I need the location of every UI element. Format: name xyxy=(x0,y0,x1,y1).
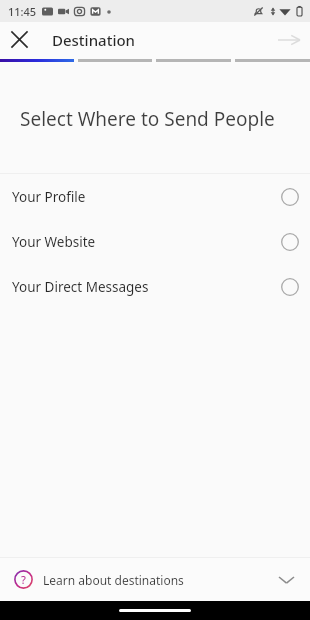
button[interactable]: Your Direct Messages xyxy=(0,264,310,309)
button[interactable]: Your Website xyxy=(0,219,310,264)
staticText: Your Direct Messages xyxy=(12,278,149,296)
button[interactable]: ? xyxy=(0,558,310,601)
staticText: Select Where to Send People xyxy=(20,106,300,132)
staticText: ? xyxy=(21,572,26,587)
button[interactable]: Your Profile xyxy=(0,174,310,219)
button[interactable]: Next xyxy=(268,22,310,57)
staticText: Your Profile xyxy=(12,188,86,206)
staticText: 11:45 xyxy=(8,4,37,19)
staticText: Learn about destinations xyxy=(43,572,184,588)
staticText: Your Website xyxy=(12,233,96,251)
staticText: Destination xyxy=(52,30,136,50)
button[interactable]: Close xyxy=(0,22,38,57)
